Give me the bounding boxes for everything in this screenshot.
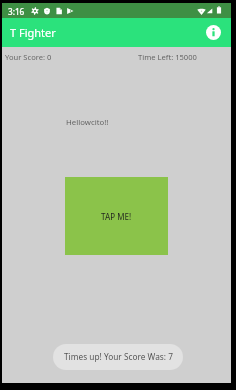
staticText: T Fighter — [10, 25, 56, 40]
staticText: Times up! Your Score Was: 7 — [64, 351, 173, 362]
staticText: Your Score: 0 — [5, 52, 52, 62]
staticText: 3:16 — [8, 6, 25, 17]
button[interactable]: Info — [202, 21, 225, 44]
staticText: Hellowcito!! — [66, 117, 109, 128]
staticText: Time Left: 15000 — [138, 52, 197, 62]
button[interactable]: TAP ME! — [65, 177, 168, 255]
staticText: TAP ME! — [101, 211, 132, 222]
